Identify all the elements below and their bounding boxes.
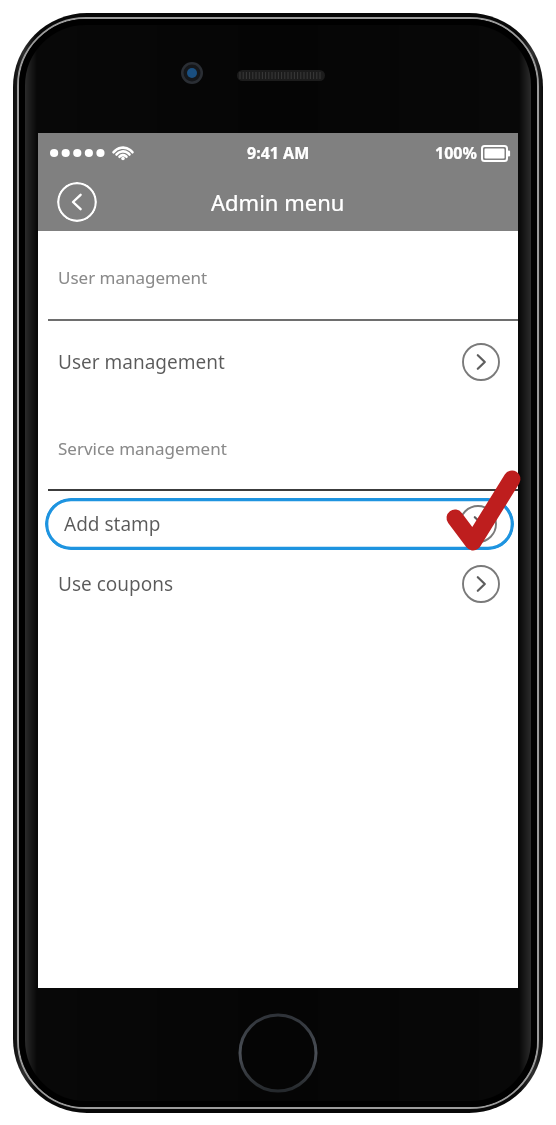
staticText: User management bbox=[58, 266, 208, 289]
button[interactable]: Use coupons bbox=[38, 553, 518, 615]
staticText: User management bbox=[58, 349, 225, 375]
other: Open bbox=[459, 505, 497, 543]
staticText: Use coupons bbox=[58, 571, 174, 597]
staticText: Admin menu bbox=[211, 187, 345, 217]
other: Open bbox=[462, 565, 500, 603]
staticText: 100% bbox=[435, 142, 477, 164]
button[interactable]: User management bbox=[38, 321, 518, 403]
other: Open bbox=[462, 343, 500, 381]
staticText: Service management bbox=[58, 437, 227, 460]
staticText: 9:41 AM bbox=[247, 142, 310, 164]
button[interactable]: Back bbox=[57, 182, 97, 222]
staticText: Add stamp bbox=[64, 511, 161, 537]
button[interactable]: Add stamp bbox=[45, 498, 514, 550]
